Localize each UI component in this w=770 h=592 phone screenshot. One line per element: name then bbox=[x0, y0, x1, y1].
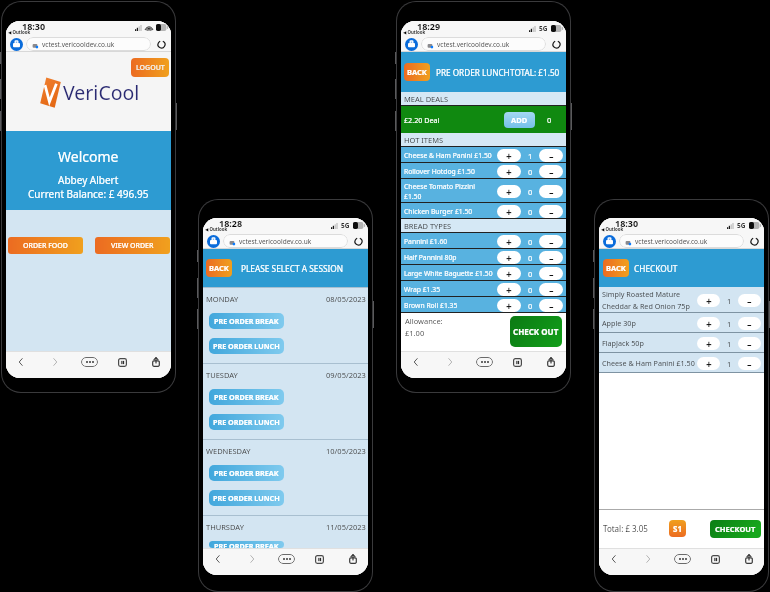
button[interactable]: Add one bbox=[697, 294, 720, 307]
staticText: vctest.vericooldev.co.uk bbox=[635, 237, 708, 246]
staticText: LOGOUT bbox=[136, 63, 165, 73]
button[interactable]: Remove one bbox=[539, 149, 563, 162]
staticText: vctest.vericooldev.co.uk bbox=[42, 40, 115, 49]
staticText: vctest.vericooldev.co.uk bbox=[239, 237, 312, 246]
staticText: + bbox=[706, 337, 712, 350]
button[interactable]: Add one bbox=[697, 337, 720, 350]
staticText: £1.50 bbox=[404, 192, 422, 201]
staticText: 18:28 bbox=[219, 218, 243, 229]
button[interactable]: vctest.vericooldev.co.uk bbox=[619, 234, 744, 248]
button[interactable]: Reload bbox=[352, 235, 364, 247]
staticText: 09/05/2023 bbox=[326, 370, 366, 380]
button[interactable]: Share bbox=[540, 352, 562, 372]
staticText: Pannini £1.60 bbox=[404, 237, 497, 246]
button[interactable]: Share bbox=[145, 352, 167, 372]
button[interactable]: Remove one bbox=[738, 357, 761, 370]
button[interactable]: Back bbox=[405, 352, 427, 372]
button[interactable]: BACK bbox=[404, 63, 430, 81]
button[interactable]: Tabs bbox=[506, 352, 528, 372]
button[interactable]: Share bbox=[738, 549, 760, 569]
button[interactable]: Add one bbox=[497, 185, 521, 198]
button[interactable]: Remove one bbox=[539, 267, 563, 280]
button[interactable]: Tabs bbox=[704, 549, 726, 569]
button[interactable]: PRE ORDER BREAK bbox=[209, 313, 284, 329]
button[interactable]: ORDER FOOD bbox=[8, 237, 83, 254]
button[interactable]: Add one bbox=[497, 165, 521, 178]
button[interactable]: Add one bbox=[497, 267, 521, 280]
staticText: 18:30 bbox=[22, 21, 46, 32]
staticText: Brown Roll £1.35 bbox=[404, 301, 497, 310]
button[interactable]: ADD bbox=[504, 112, 535, 128]
button[interactable]: Forward bbox=[439, 352, 461, 372]
staticText: – bbox=[747, 295, 752, 307]
button[interactable]: Back bbox=[603, 549, 625, 569]
staticText: ◀ Outlook bbox=[205, 226, 228, 232]
staticText: Total: £ 3.05 bbox=[603, 523, 648, 534]
button[interactable]: Remove one bbox=[738, 317, 761, 330]
button[interactable]: CHECKOUT bbox=[710, 520, 761, 538]
button[interactable]: CHECK OUT bbox=[510, 316, 562, 347]
button[interactable]: Remove one bbox=[539, 205, 563, 218]
staticText: MEAL DEALS bbox=[404, 94, 449, 104]
button[interactable]: Remove one bbox=[738, 337, 761, 350]
button[interactable]: More bbox=[275, 549, 297, 569]
button[interactable]: Remove one bbox=[539, 165, 563, 178]
staticText: Wrap £1.35 bbox=[404, 285, 497, 294]
button[interactable]: S1 bbox=[669, 520, 686, 537]
staticText: PRE ORDER LUNCH bbox=[213, 417, 280, 427]
button[interactable]: Remove one bbox=[539, 299, 563, 312]
button[interactable]: PRE ORDER BREAK bbox=[209, 465, 284, 481]
button[interactable]: Add one bbox=[697, 357, 720, 370]
staticText: + bbox=[706, 357, 712, 370]
button[interactable]: More bbox=[78, 352, 100, 372]
button[interactable]: vctest.vericooldev.co.uk bbox=[223, 234, 348, 248]
button[interactable]: Remove one bbox=[539, 251, 563, 264]
button[interactable]: Tabs bbox=[111, 352, 133, 372]
staticText: + bbox=[506, 251, 512, 264]
button[interactable]: Forward bbox=[241, 549, 263, 569]
staticText: 0 bbox=[528, 167, 533, 177]
staticText: + bbox=[506, 235, 512, 248]
button[interactable]: Add one bbox=[497, 251, 521, 264]
button[interactable]: vctest.vericooldev.co.uk bbox=[421, 37, 546, 51]
button[interactable]: VIEW ORDER bbox=[95, 237, 170, 254]
button[interactable]: LOGOUT bbox=[131, 58, 169, 77]
button[interactable]: Work profile bbox=[405, 38, 418, 51]
staticText: – bbox=[549, 186, 554, 198]
button[interactable]: Reload bbox=[748, 235, 760, 247]
button[interactable]: vctest.vericooldev.co.uk bbox=[26, 37, 151, 51]
button[interactable]: Share bbox=[342, 549, 364, 569]
button[interactable]: PRE ORDER BREAK bbox=[209, 389, 284, 405]
button[interactable]: PRE ORDER BREAK bbox=[209, 541, 284, 548]
button[interactable]: Add one bbox=[497, 149, 521, 162]
button[interactable]: Add one bbox=[697, 317, 720, 330]
button[interactable]: Work profile bbox=[603, 235, 616, 248]
button[interactable]: BACK bbox=[603, 259, 629, 277]
button[interactable]: Reload bbox=[155, 38, 167, 50]
button[interactable]: Add one bbox=[497, 299, 521, 312]
button[interactable]: More bbox=[473, 352, 495, 372]
button[interactable]: Reload bbox=[550, 38, 562, 50]
button[interactable]: Forward bbox=[44, 352, 66, 372]
button[interactable]: PRE ORDER LUNCH bbox=[209, 490, 284, 506]
button[interactable]: Add one bbox=[497, 235, 521, 248]
button[interactable]: Back bbox=[10, 352, 32, 372]
button[interactable]: More bbox=[671, 549, 693, 569]
button[interactable]: BACK bbox=[206, 259, 232, 277]
button[interactable]: PRE ORDER LUNCH bbox=[209, 338, 284, 354]
button[interactable]: Back bbox=[207, 549, 229, 569]
button[interactable]: Work profile bbox=[10, 38, 23, 51]
button[interactable]: Add one bbox=[497, 283, 521, 296]
button[interactable]: PRE ORDER LUNCH bbox=[209, 414, 284, 430]
staticText: – bbox=[549, 252, 554, 264]
button[interactable]: Add one bbox=[497, 205, 521, 218]
button[interactable]: Remove one bbox=[738, 294, 761, 307]
button[interactable]: Work profile bbox=[207, 235, 220, 248]
button[interactable]: Remove one bbox=[539, 185, 563, 198]
button[interactable]: Forward bbox=[637, 549, 659, 569]
staticText: CHECKOUT bbox=[715, 524, 756, 534]
button[interactable]: Remove one bbox=[539, 283, 563, 296]
staticText: Rollover Hotdog £1.50 bbox=[404, 167, 497, 176]
button[interactable]: Remove one bbox=[539, 235, 563, 248]
button[interactable]: Tabs bbox=[308, 549, 330, 569]
